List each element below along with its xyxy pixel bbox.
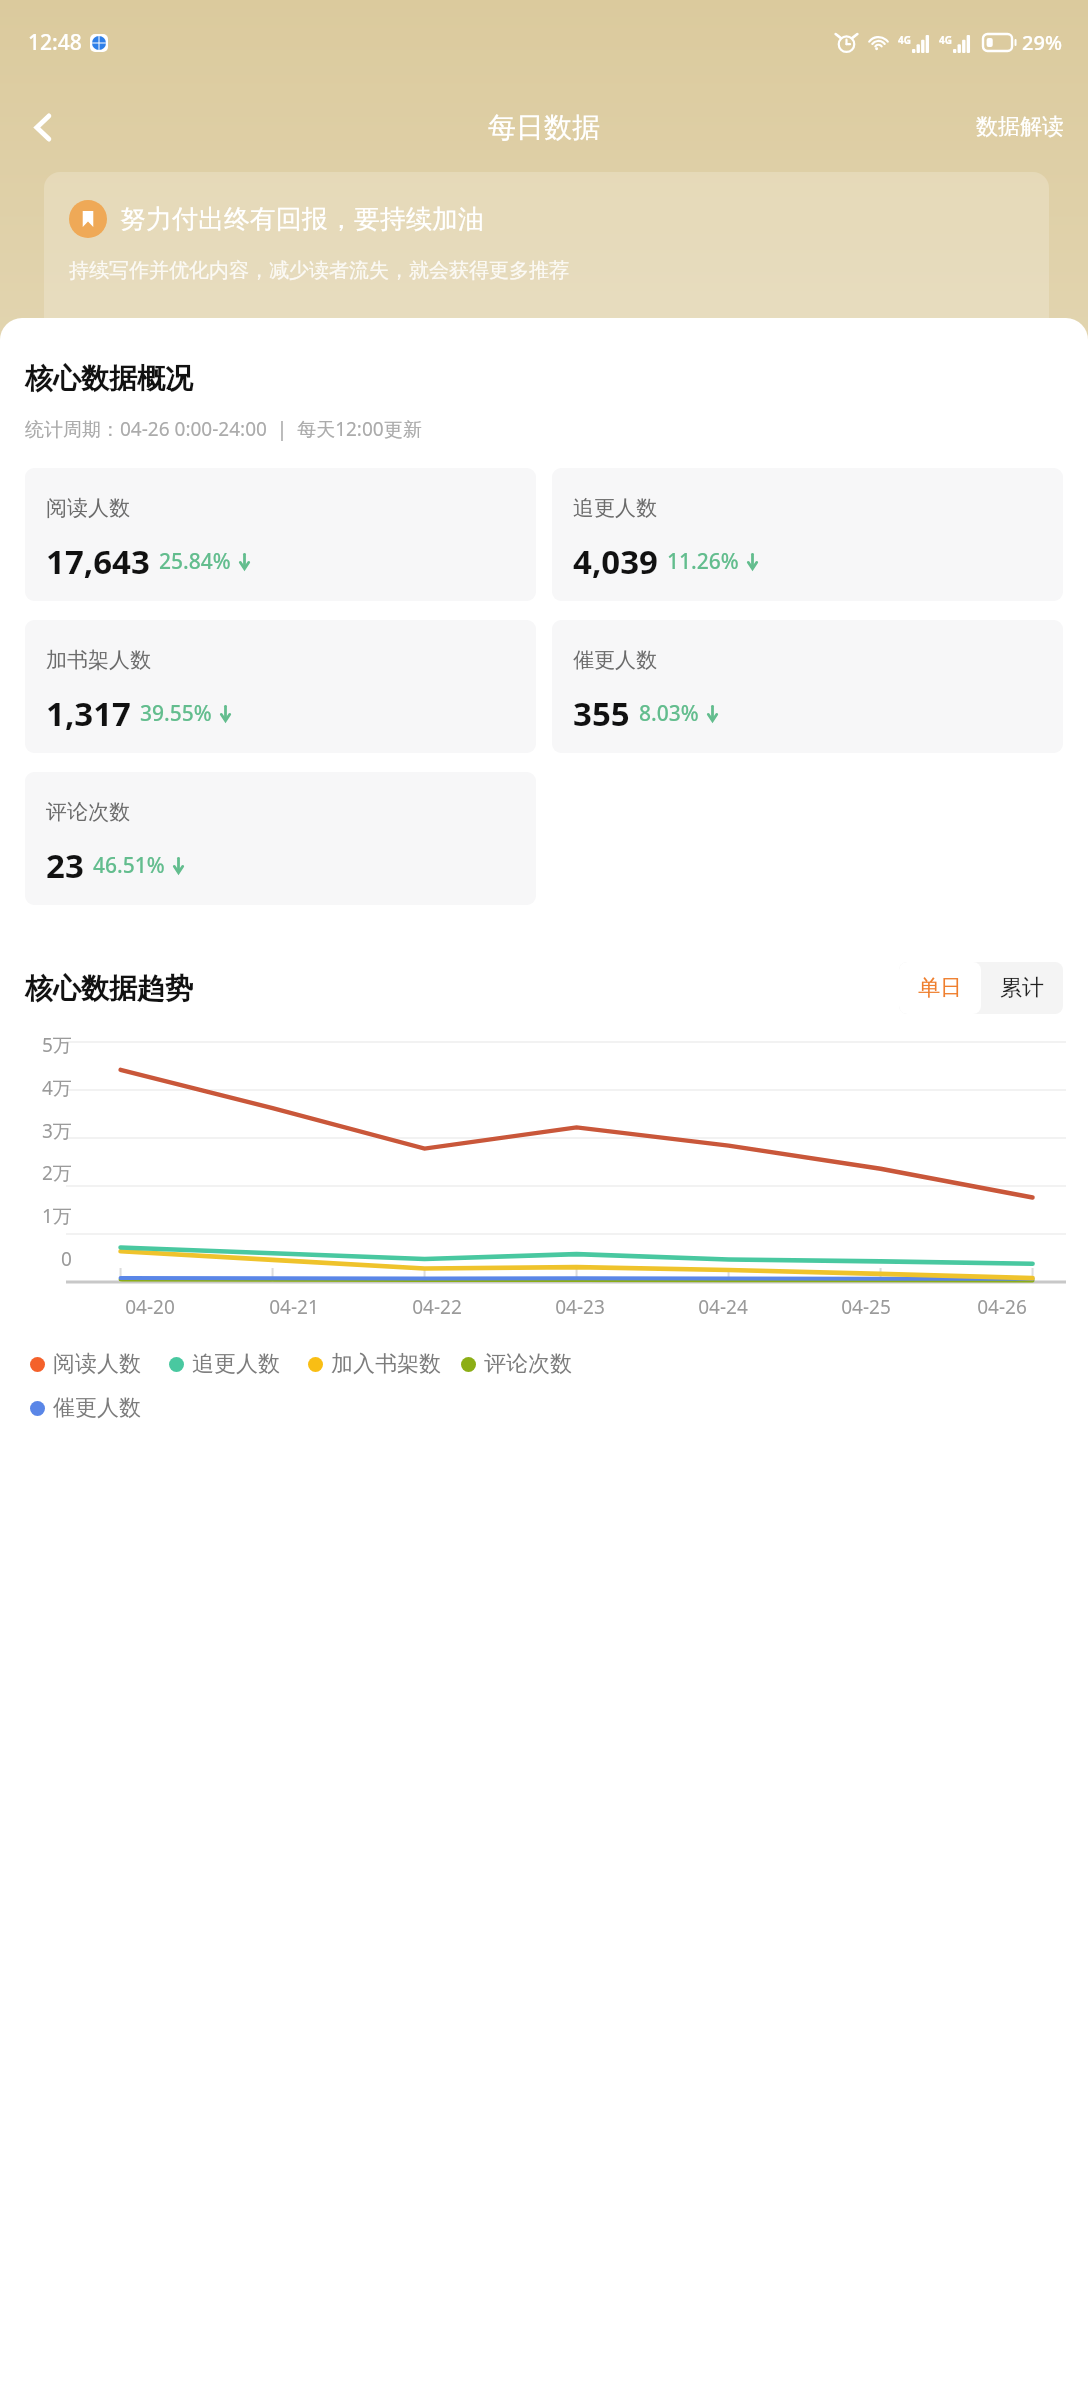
button[interactable]: 阅读人数 — [30, 1350, 141, 1378]
staticText: 加书架人数 — [46, 647, 151, 673]
staticText: 25.84% — [159, 547, 231, 576]
staticText: 阅读人数 — [46, 495, 130, 521]
staticText: 阅读人数 — [53, 1350, 141, 1378]
staticText: 3万 — [42, 1118, 72, 1144]
staticText: 5万 — [42, 1032, 72, 1058]
staticText: 17,643 — [46, 539, 150, 584]
staticText: 加入书架数 — [331, 1350, 441, 1378]
button[interactable]: Back — [12, 96, 74, 158]
button[interactable]: 单日 — [899, 962, 981, 1014]
staticText: 每日数据 — [488, 110, 600, 145]
staticText: 46.51% — [93, 851, 165, 880]
staticText: 持续写作并优化内容，减少读者流失，就会获得更多推荐 — [69, 258, 569, 283]
staticText: 核心数据概况 — [25, 361, 193, 396]
staticText: 4G — [939, 33, 952, 47]
staticText: 04-24 — [698, 1294, 748, 1320]
staticText: 04-20 — [125, 1294, 175, 1320]
staticText: 4G — [898, 33, 911, 47]
staticText: 1,317 — [46, 691, 131, 736]
button[interactable]: 追更人数 — [552, 468, 1063, 601]
staticText: 催更人数 — [53, 1394, 141, 1422]
staticText: 04-26 — [977, 1294, 1027, 1320]
button[interactable]: 累计 — [981, 962, 1063, 1014]
staticText: 4,039 — [573, 539, 658, 584]
staticText: 8.03% — [639, 699, 699, 728]
button[interactable]: 加书架人数 — [25, 620, 536, 753]
button[interactable]: 数据解读 — [976, 113, 1064, 141]
staticText: 04-23 — [555, 1294, 605, 1320]
staticText: 追更人数 — [192, 1350, 280, 1378]
staticText: 催更人数 — [573, 647, 657, 673]
staticText: 评论次数 — [484, 1350, 572, 1378]
staticText: 1万 — [42, 1203, 72, 1229]
staticText: 04-25 — [841, 1294, 891, 1320]
staticText: 单日 — [918, 974, 962, 1002]
staticText: 11.26% — [667, 547, 739, 576]
staticText: 4万 — [42, 1075, 72, 1101]
button[interactable]: 阅读人数 — [25, 468, 536, 601]
staticText: 39.55% — [140, 699, 212, 728]
staticText: 统计周期：04-26 0:00-24:00 | 每天12:00更新 — [25, 416, 422, 442]
staticText: 355 — [573, 691, 630, 736]
button[interactable]: 评论次数 — [461, 1350, 572, 1378]
button[interactable]: 评论次数 — [25, 772, 536, 905]
staticText: 29% — [1022, 29, 1062, 56]
staticText: 0 — [61, 1246, 72, 1272]
staticText: 23 — [46, 843, 84, 888]
button[interactable]: 催更人数 — [30, 1394, 141, 1422]
button[interactable]: 催更人数 — [552, 620, 1063, 753]
staticText: 核心数据趋势 — [25, 971, 193, 1006]
staticText: 评论次数 — [46, 799, 130, 825]
staticText: 2万 — [42, 1160, 72, 1186]
staticText: 04-21 — [269, 1294, 319, 1320]
staticText: 12:48 — [28, 28, 82, 57]
button[interactable]: 追更人数 — [169, 1350, 280, 1378]
staticText: 追更人数 — [573, 495, 657, 521]
staticText: 04-22 — [412, 1294, 462, 1320]
staticText: 努力付出终有回报，要持续加油 — [120, 203, 484, 236]
button[interactable]: 加入书架数 — [308, 1350, 441, 1378]
staticText: 累计 — [1000, 974, 1044, 1002]
